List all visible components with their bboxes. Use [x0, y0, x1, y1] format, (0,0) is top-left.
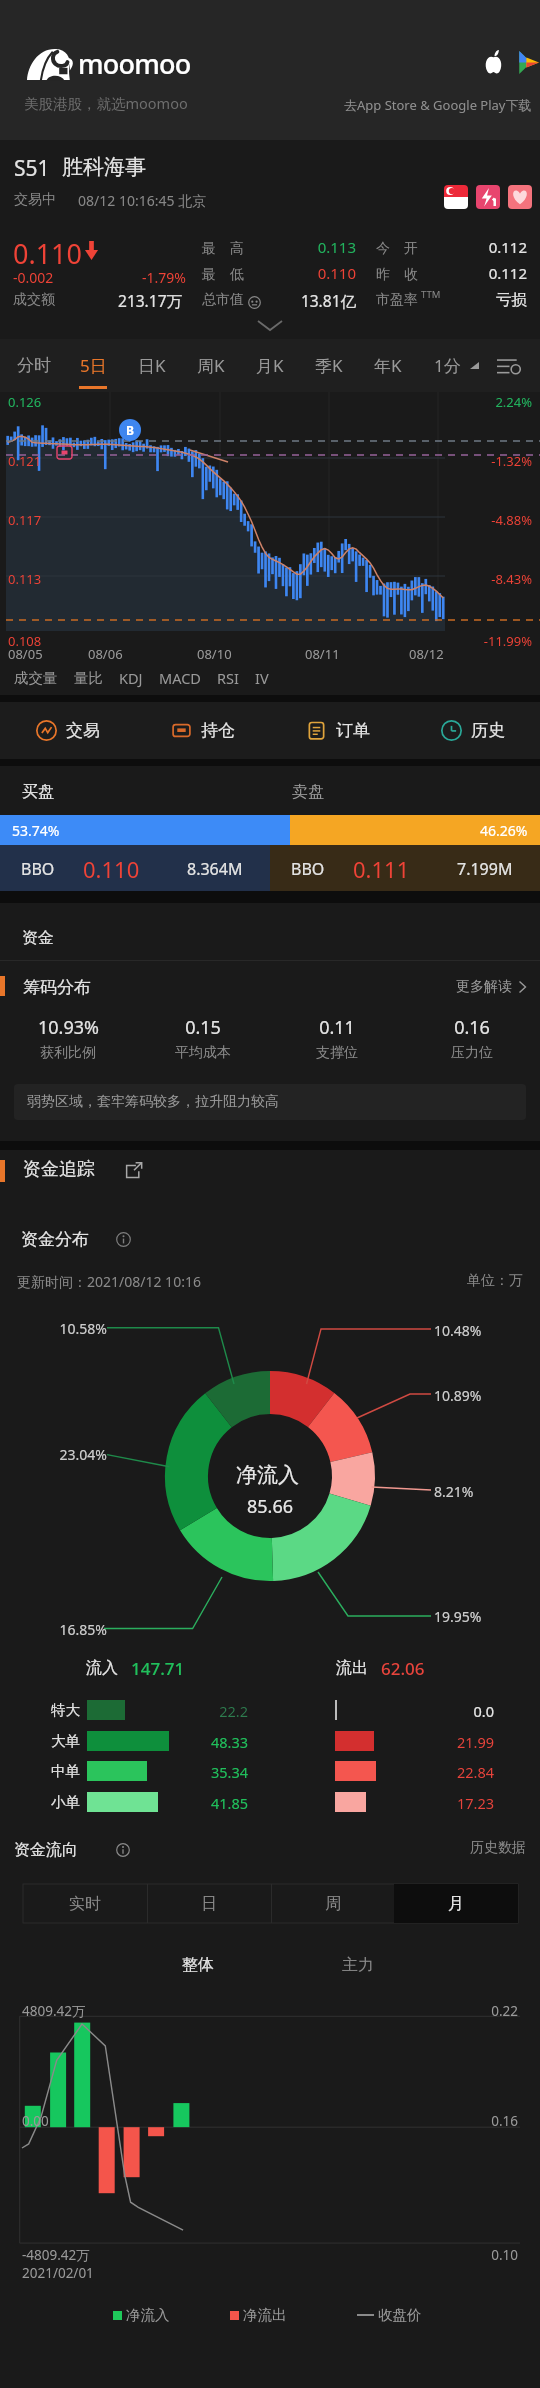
staticText: 0.126 [8, 393, 42, 411]
button[interactable]: IV [255, 668, 285, 688]
staticText: 周 [325, 1894, 341, 1914]
button[interactable]: 5日 [64, 339, 122, 392]
button[interactable]: 53.74% [0, 815, 290, 845]
staticText: 支撑位 [316, 1044, 358, 1062]
staticText: 0.22 [432, 2002, 518, 2020]
staticText: 季K [315, 354, 343, 377]
staticText: 22.84 [432, 1762, 494, 1782]
button[interactable]: 量比 [74, 669, 119, 687]
staticText: 0.110 [285, 263, 356, 283]
button[interactable]: Share funds tracking [119, 1155, 149, 1185]
staticText: 美股港股，就选moomoo [24, 93, 188, 113]
button[interactable]: 持仓 [135, 702, 270, 759]
button[interactable]: 周 [271, 1884, 395, 1923]
staticText: 更新时间：2021/08/12 10:16 [17, 1272, 201, 1291]
staticText: 最 低 [202, 264, 244, 283]
staticText: 中单 [34, 1762, 80, 1780]
button[interactable]: 主力 [320, 1950, 396, 1980]
staticText: 资金 [22, 928, 54, 948]
staticText: 周K [197, 354, 225, 377]
button[interactable]: MACD [159, 668, 217, 688]
button[interactable]: 历史 [405, 702, 540, 759]
staticText: 1分 [434, 354, 461, 377]
staticText: 22.2 [186, 1701, 248, 1721]
staticText: 0.108 [8, 632, 42, 650]
staticText: 0.11 [319, 1015, 355, 1040]
staticText: 53.74% [12, 821, 60, 840]
staticText: 17.23 [432, 1793, 494, 1813]
button[interactable]: 46.26% [290, 815, 540, 845]
staticText: 0.111 [353, 854, 410, 884]
button[interactable]: Singapore market [444, 185, 468, 209]
staticText: 获利比例 [40, 1044, 96, 1062]
staticText: 13.81亿 [275, 290, 356, 311]
button[interactable]: KDJ [119, 668, 159, 688]
staticText: 08/12 10:16:45 北京 [78, 191, 207, 210]
staticText: 流出 [336, 1658, 368, 1678]
staticText: 10.89% [434, 1386, 482, 1405]
button[interactable]: 周K [182, 339, 240, 392]
staticText: 交易 [66, 720, 100, 741]
staticText: 小单 [34, 1793, 80, 1811]
staticText: 23.04% [20, 1445, 107, 1464]
staticText: 08/06 [88, 645, 123, 663]
button[interactable]: 日 [147, 1884, 271, 1923]
button[interactable]: 订单 [270, 702, 405, 759]
staticText: 7.199M [457, 858, 513, 880]
staticText: 35.34 [186, 1762, 248, 1782]
staticText: 总市值 [202, 291, 244, 309]
staticText: 8.21% [434, 1482, 474, 1501]
staticText: 0.110 [13, 235, 83, 272]
button[interactable]: 年K [359, 339, 417, 392]
staticText: 今 开 [376, 238, 418, 257]
button[interactable]: 成交量 [14, 669, 74, 687]
staticText: 净流出 [243, 2306, 287, 2324]
staticText: 更多解读 [456, 978, 512, 996]
staticText: 整体 [182, 1955, 214, 1975]
staticText: 收盘价 [378, 2306, 422, 2324]
staticText: 买盘 [22, 782, 54, 802]
staticText: -1.32% [444, 452, 532, 470]
button[interactable]: 季K [300, 339, 358, 392]
staticText: 0.00 [22, 2112, 49, 2130]
staticText: -0.002 [13, 268, 54, 287]
button[interactable]: BBO [0, 845, 270, 891]
button[interactable]: 分时 [5, 339, 63, 392]
button[interactable]: 历史数据 [440, 1832, 526, 1864]
staticText: 213.17万 [96, 290, 182, 311]
staticText: 流入 [86, 1658, 118, 1678]
button[interactable]: 实时 [23, 1884, 147, 1923]
button[interactable]: 月K [241, 339, 299, 392]
button[interactable]: RSI [217, 668, 255, 688]
staticText: MACD [159, 668, 201, 688]
staticText: 0.112 [456, 263, 527, 283]
button[interactable]: 交易 [0, 702, 135, 759]
button[interactable]: 日K [123, 339, 181, 392]
staticText: 41.85 [186, 1793, 248, 1813]
staticText: 分时 [17, 355, 51, 376]
button[interactable]: 1分 [424, 339, 488, 392]
staticText: 成交量 [14, 669, 58, 687]
staticText: 8.364M [187, 858, 243, 880]
staticText: 最 高 [202, 238, 244, 257]
staticText: 16.85% [20, 1620, 107, 1639]
staticText: 48.33 [186, 1732, 248, 1752]
staticText: 0.16 [432, 2112, 518, 2130]
staticText: BBO [21, 858, 55, 880]
staticText: 147.71 [131, 1657, 185, 1680]
button[interactable]: 月 [394, 1884, 518, 1923]
button[interactable]: Chart settings [492, 339, 526, 392]
staticText: 0.0 [432, 1701, 494, 1721]
staticText: 10.93% [38, 1015, 99, 1040]
button[interactable]: Level 1 quotes [476, 185, 500, 209]
staticText: IV [255, 668, 269, 688]
staticText: TTM [421, 288, 441, 301]
button[interactable]: 整体 [160, 1950, 236, 1980]
staticText: 交易中 [14, 191, 56, 209]
staticText: 21.99 [432, 1732, 494, 1752]
button[interactable]: 更多解读 [420, 970, 526, 1004]
button[interactable]: BBO [270, 845, 540, 891]
staticText: 08/11 [305, 645, 340, 663]
button[interactable]: Add to watchlist [508, 185, 532, 209]
staticText: 单位：万 [426, 1272, 523, 1290]
